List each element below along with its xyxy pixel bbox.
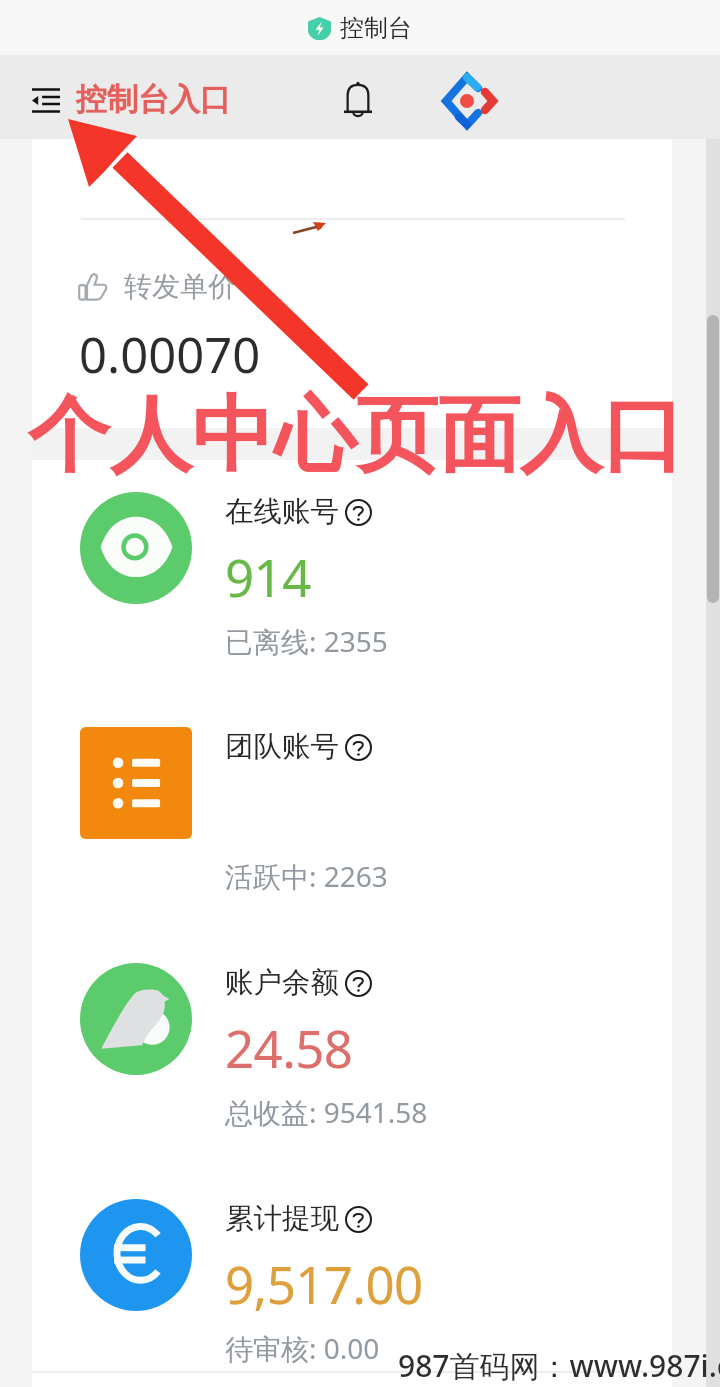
staticText: 转发单价 xyxy=(124,269,236,304)
button[interactable]: 团队账号 xyxy=(32,705,672,940)
staticText: 9,517.00 xyxy=(225,1249,423,1318)
staticText: 总收益: 9541.58 xyxy=(225,1093,428,1131)
staticText: 团队账号 xyxy=(225,729,339,765)
staticText: 控制台 xyxy=(340,13,412,43)
staticText: 活跃中: 2263 xyxy=(225,857,388,895)
staticText: 个人中心页面入口 xyxy=(28,384,684,487)
button[interactable]: App logo xyxy=(433,64,505,138)
staticText: 控制台入口 xyxy=(76,80,231,119)
button[interactable]: 账户余额 xyxy=(32,941,672,1176)
staticText: 914 xyxy=(225,542,311,611)
button[interactable]: 控制台入口 xyxy=(76,72,231,126)
staticText: 987首码网：www.987i.com xyxy=(398,1345,720,1386)
staticText: 累计提现 xyxy=(225,1201,339,1237)
button[interactable]: Menu xyxy=(21,75,71,123)
staticText: 待审核: 0.00 xyxy=(225,1329,380,1367)
staticText: 0.00070 xyxy=(79,321,261,388)
button[interactable]: 累计提现 xyxy=(32,1177,672,1387)
button[interactable]: 在线账号 xyxy=(32,470,672,705)
staticText: 已离线: 2355 xyxy=(225,622,388,660)
staticText: 账户余额 xyxy=(225,965,339,1001)
staticText: 在线账号 xyxy=(225,494,339,530)
button[interactable]: Notifications xyxy=(329,70,386,127)
staticText: 24.58 xyxy=(225,1013,353,1082)
